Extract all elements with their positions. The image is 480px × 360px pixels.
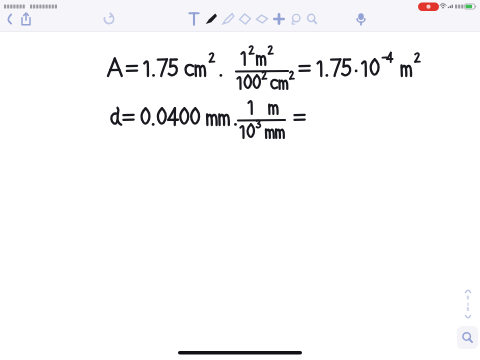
button[interactable]: Undo <box>100 10 119 29</box>
button[interactable]: Lasso select <box>287 9 305 29</box>
button[interactable]: Pencil tool <box>219 9 237 29</box>
button[interactable]: Insert <box>270 9 288 29</box>
button[interactable]: Pen tool <box>202 9 220 29</box>
button[interactable]: Text tool <box>185 9 203 29</box>
button[interactable]: Record audio <box>352 9 371 29</box>
button[interactable]: Back <box>2 11 18 28</box>
button[interactable]: Share <box>17 10 36 29</box>
button[interactable]: Page navigator <box>457 285 479 323</box>
button[interactable]: Eraser tool <box>236 9 254 29</box>
button[interactable]: Zoom <box>457 326 478 349</box>
button[interactable]: Highlighter tool <box>253 9 271 29</box>
button[interactable]: Zoom tool <box>303 9 321 29</box>
